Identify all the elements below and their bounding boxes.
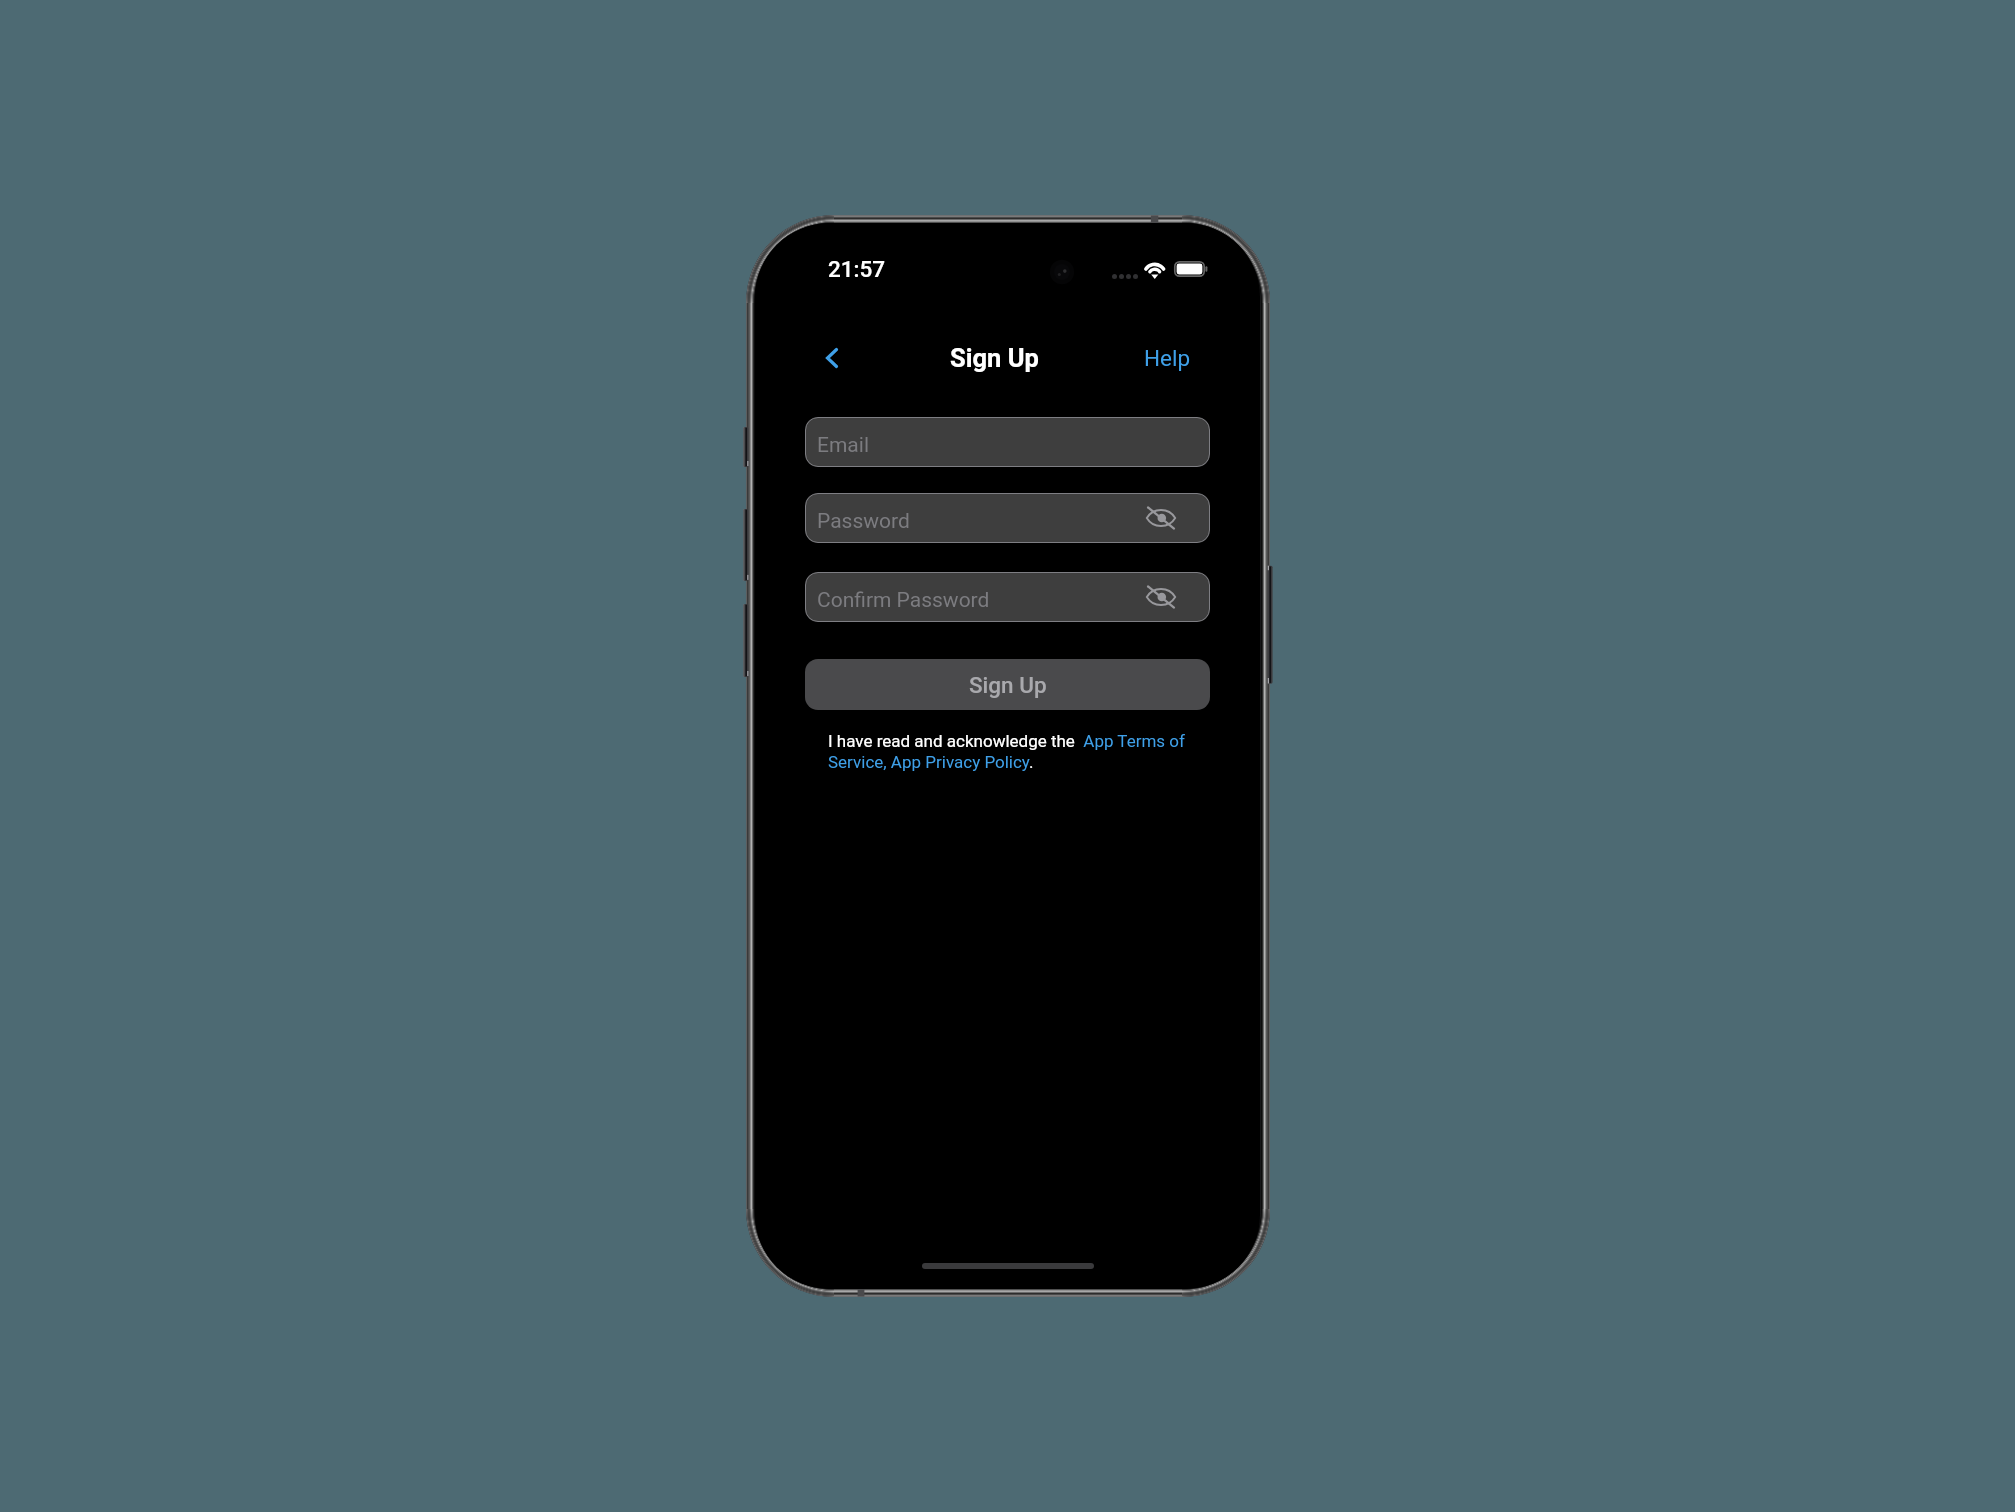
button[interactable]: Confirm Password: [805, 572, 1210, 622]
staticText: 21:57: [828, 256, 886, 282]
staticText: Help: [1144, 345, 1191, 371]
staticText: Sign Up: [950, 343, 1039, 373]
staticText: Sign Up: [969, 672, 1047, 698]
button[interactable]: Back: [810, 336, 854, 380]
staticText: I have read and acknowledge the App Term…: [828, 731, 1192, 772]
button[interactable]: Email: [805, 417, 1210, 467]
staticText: Email: [817, 433, 869, 458]
button[interactable]: I have read and acknowledge the App Term…: [828, 731, 1192, 772]
button[interactable]: Sign Up: [805, 659, 1210, 710]
staticText: Password: [817, 509, 910, 534]
button[interactable]: Show password: [1144, 501, 1178, 535]
button[interactable]: Password: [805, 493, 1210, 543]
staticText: Confirm Password: [817, 588, 990, 613]
button[interactable]: Help: [1144, 345, 1191, 371]
button[interactable]: Show password: [1144, 580, 1178, 614]
